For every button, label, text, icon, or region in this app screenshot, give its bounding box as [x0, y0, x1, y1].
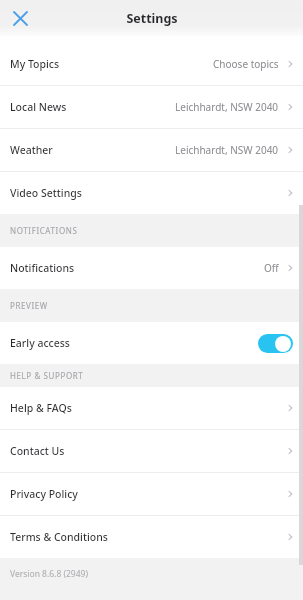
staticText: Privacy Policy: [10, 487, 78, 501]
button[interactable]: Close: [7, 5, 33, 31]
staticText: Contact Us: [10, 444, 65, 458]
button[interactable]: Weather: [0, 129, 303, 171]
staticText: My Topics: [10, 57, 60, 71]
button[interactable]: My Topics: [0, 43, 303, 85]
button[interactable]: Terms & Conditions: [0, 516, 303, 558]
staticText: NOTIFICATIONS: [10, 225, 78, 236]
button[interactable]: Notifications: [0, 247, 303, 289]
other: Early access toggle, on: [258, 334, 293, 353]
button[interactable]: Help & FAQs: [0, 387, 303, 429]
staticText: Notifications: [10, 261, 75, 275]
button[interactable]: Early access: [0, 322, 303, 364]
staticText: Local News: [10, 100, 67, 114]
button[interactable]: Privacy Policy: [0, 473, 303, 515]
staticText: Leichhardt, NSW 2040: [175, 143, 279, 157]
staticText: PREVIEW: [10, 300, 48, 311]
staticText: Settings: [126, 10, 178, 27]
staticText: Off: [264, 261, 279, 275]
staticText: Early access: [10, 336, 70, 350]
staticText: Help & FAQs: [10, 401, 72, 415]
staticText: Version 8.6.8 (2949): [10, 568, 89, 580]
button[interactable]: Video Settings: [0, 172, 303, 214]
button[interactable]: Contact Us: [0, 430, 303, 472]
staticText: HELP & SUPPORT: [10, 370, 84, 381]
staticText: Choose topics: [213, 57, 279, 71]
staticText: Leichhardt, NSW 2040: [175, 100, 279, 114]
staticText: Video Settings: [10, 186, 82, 200]
button[interactable]: Local News: [0, 86, 303, 128]
staticText: Weather: [10, 143, 53, 157]
staticText: Terms & Conditions: [10, 530, 108, 544]
